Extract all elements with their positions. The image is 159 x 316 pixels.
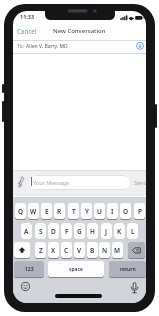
staticText: N <box>102 246 108 255</box>
staticText: To: <box>17 43 24 50</box>
button[interactable]: C <box>61 242 72 258</box>
button[interactable] <box>130 282 139 296</box>
button[interactable]: Z <box>35 242 46 258</box>
staticText: E <box>45 207 49 216</box>
button[interactable]: X <box>48 242 59 258</box>
button[interactable]: return <box>109 261 146 277</box>
staticText: H <box>90 227 95 236</box>
staticText: Allen V, Barry, MD <box>26 43 68 50</box>
button[interactable]: K <box>114 223 125 239</box>
button[interactable]: L <box>127 223 138 239</box>
button[interactable]: E <box>41 203 52 219</box>
staticText: 123 <box>25 266 34 273</box>
button[interactable]: Y <box>81 203 92 219</box>
staticText: X <box>51 246 56 255</box>
button[interactable]: H <box>87 223 98 239</box>
staticText: R <box>57 207 62 216</box>
staticText: J <box>105 227 108 236</box>
button[interactable]: Cancel <box>17 27 37 35</box>
staticText: A <box>24 227 29 236</box>
staticText: M <box>114 246 121 255</box>
button[interactable]: M <box>112 242 123 258</box>
staticText: P <box>138 207 142 216</box>
button[interactable] <box>128 242 145 258</box>
button[interactable]: F <box>61 223 72 239</box>
staticText: I <box>111 207 114 216</box>
staticText: D <box>51 227 56 236</box>
staticText: return <box>120 266 136 273</box>
button[interactable]: G <box>74 223 85 239</box>
staticText: Cancel <box>17 27 37 35</box>
staticText: V <box>77 246 82 255</box>
button[interactable]: I <box>107 203 118 219</box>
staticText: W <box>30 207 37 216</box>
button[interactable]: J <box>101 223 112 239</box>
button[interactable] <box>136 42 144 50</box>
button[interactable]: S <box>35 223 46 239</box>
staticText: S <box>39 227 43 236</box>
button[interactable] <box>14 242 30 258</box>
staticText: F <box>65 227 69 236</box>
button[interactable]: R <box>54 203 65 219</box>
staticText: K <box>117 227 122 236</box>
staticText: 11:33 <box>20 13 35 20</box>
button[interactable]: B <box>87 242 98 258</box>
button[interactable]: P <box>134 203 145 219</box>
staticText: B <box>90 246 95 255</box>
button[interactable]: W <box>28 203 39 219</box>
staticText: Send <box>134 179 146 186</box>
staticText: U <box>97 207 102 216</box>
button[interactable]: Q <box>15 203 26 219</box>
staticText: Your Message <box>33 179 70 186</box>
staticText: C <box>64 246 69 255</box>
button[interactable]: space <box>48 261 104 277</box>
button[interactable]: T <box>68 203 79 219</box>
staticText: space <box>69 266 83 273</box>
button[interactable]: N <box>99 242 110 258</box>
staticText: L <box>131 227 135 236</box>
staticText: T <box>72 207 76 216</box>
staticText: Z <box>39 246 43 255</box>
button[interactable]: U <box>94 203 105 219</box>
staticText: Q <box>18 207 24 216</box>
staticText: Y <box>85 207 89 216</box>
staticText: New Conversation <box>53 27 106 35</box>
button[interactable]: V <box>74 242 85 258</box>
button[interactable]: Send <box>134 179 146 186</box>
staticText: O <box>123 207 129 216</box>
button[interactable] <box>28 175 131 190</box>
button[interactable]: 123 <box>14 261 44 277</box>
button[interactable] <box>16 176 25 187</box>
button[interactable]: O <box>120 203 131 219</box>
button[interactable]: A <box>21 223 32 239</box>
staticText: G <box>77 227 82 236</box>
button[interactable]: D <box>48 223 59 239</box>
button[interactable] <box>21 282 30 291</box>
